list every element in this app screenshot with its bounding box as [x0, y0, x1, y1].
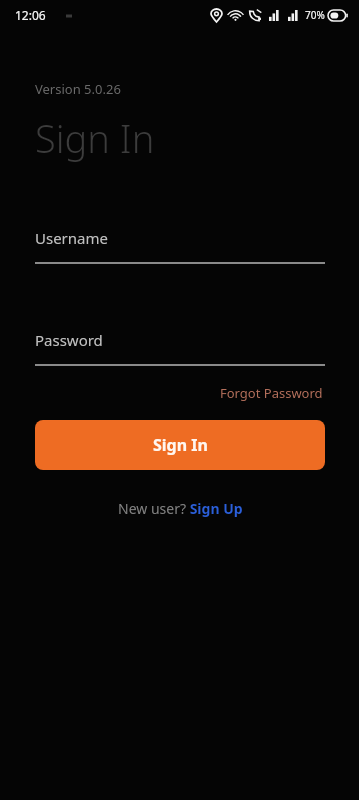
- button[interactable]: Username: [35, 228, 325, 264]
- staticText: Username: [35, 228, 108, 248]
- button[interactable]: Sign In: [35, 420, 325, 470]
- staticText: New user? Sign Up: [118, 499, 243, 518]
- staticText: Sign In: [153, 434, 208, 456]
- staticText: 70%: [305, 8, 325, 22]
- other: Signal: [269, 10, 282, 21]
- staticText: Forgot Password: [220, 384, 323, 402]
- other: Wi-Fi: [229, 10, 242, 21]
- button[interactable]: Forgot Password: [218, 382, 325, 404]
- other: Signal: [288, 10, 301, 21]
- other: Location: [211, 9, 222, 22]
- staticText: Sign In: [35, 112, 155, 164]
- staticText: 12:06: [15, 7, 46, 23]
- staticText: Password: [35, 330, 103, 350]
- other: Calls: [249, 9, 262, 21]
- staticText: Version 5.0.26: [35, 80, 121, 98]
- other: Battery 70%: [328, 10, 348, 21]
- button[interactable]: New user? Sign Up: [114, 495, 247, 522]
- button[interactable]: Password: [35, 330, 325, 366]
